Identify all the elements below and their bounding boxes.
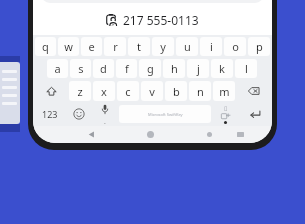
button[interactable]: Microsoft SwiftKey	[119, 105, 211, 123]
staticText: o	[232, 39, 239, 54]
staticText: y	[160, 39, 166, 54]
button[interactable]: l	[235, 59, 257, 78]
staticText: 123	[42, 108, 58, 120]
button[interactable]: h	[163, 59, 185, 78]
staticText: g	[147, 61, 154, 76]
button[interactable]: f	[116, 59, 137, 78]
button[interactable]: Backspace	[237, 81, 270, 101]
staticText: ,	[104, 117, 106, 124]
staticText: a	[54, 61, 61, 76]
staticText: 217 555-0113	[123, 12, 199, 28]
staticText: r	[113, 39, 118, 54]
staticText: Microsoft SwiftKey	[148, 112, 183, 117]
button[interactable]: z	[69, 81, 91, 101]
staticText: s	[78, 61, 84, 76]
button[interactable]: o	[224, 37, 246, 56]
button[interactable]: a	[47, 59, 68, 78]
staticText: z	[77, 84, 83, 99]
staticText: t	[137, 39, 141, 54]
staticText: 	[224, 105, 228, 113]
button[interactable]: m	[213, 81, 235, 101]
button[interactable]: w	[58, 37, 79, 56]
staticText: k	[219, 61, 225, 76]
staticText: f	[125, 61, 129, 76]
button[interactable]: d	[93, 59, 114, 78]
staticText: c	[125, 84, 131, 99]
staticText: u	[184, 39, 191, 54]
button[interactable]: Back	[76, 126, 107, 143]
button[interactable]: Home	[135, 126, 166, 143]
other: Contact	[106, 14, 118, 26]
staticText: x	[101, 84, 107, 99]
button[interactable]: v	[141, 81, 163, 101]
staticText: l	[245, 61, 248, 76]
button[interactable]: j	[187, 59, 209, 78]
staticText: w	[64, 39, 73, 54]
button[interactable]: r	[104, 37, 126, 56]
button[interactable]: k	[211, 59, 233, 78]
button[interactable]: Contact	[33, 8, 272, 32]
staticText: e	[88, 39, 95, 54]
staticText: i	[210, 39, 213, 54]
button[interactable]: c	[117, 81, 139, 101]
button[interactable]: i	[200, 37, 222, 56]
staticText: n	[197, 84, 204, 99]
button[interactable]: e	[81, 37, 102, 56]
staticText: h	[171, 61, 178, 76]
staticText: j	[197, 61, 200, 76]
staticText: m	[219, 84, 230, 99]
button[interactable]: p	[248, 37, 270, 56]
staticText: q	[42, 39, 49, 54]
staticText: v	[149, 84, 155, 99]
button[interactable]: s	[70, 59, 91, 78]
button[interactable]: n	[189, 81, 211, 101]
button[interactable]: Keyboard toggle	[225, 126, 256, 143]
staticText: p	[256, 39, 263, 54]
button[interactable]: Period	[213, 104, 237, 124]
button[interactable]: g	[139, 59, 161, 78]
button[interactable]: Enter	[239, 104, 270, 124]
button[interactable]: Emoji	[67, 104, 91, 124]
button[interactable]: u	[176, 37, 198, 56]
button[interactable]: Voice input	[93, 104, 117, 124]
staticText: b	[173, 84, 180, 99]
button[interactable]: x	[93, 81, 115, 101]
button[interactable]: y	[152, 37, 174, 56]
button[interactable]: t	[128, 37, 150, 56]
button[interactable]: 123	[35, 104, 65, 124]
button[interactable]: q	[35, 37, 56, 56]
button[interactable]: Recents	[194, 126, 225, 143]
button[interactable]: b	[165, 81, 187, 101]
button[interactable]: Shift	[35, 81, 67, 101]
staticText: d	[100, 61, 107, 76]
